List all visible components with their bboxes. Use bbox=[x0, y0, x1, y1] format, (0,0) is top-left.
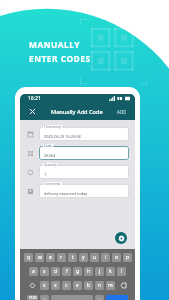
staticText: Timestamp bbox=[44, 125, 61, 129]
staticText: k bbox=[109, 268, 112, 275]
button[interactable]: Enter bbox=[106, 295, 128, 300]
button[interactable]: t bbox=[68, 253, 77, 262]
button[interactable]: q bbox=[24, 253, 33, 262]
staticText: m bbox=[108, 282, 113, 289]
button[interactable]: w bbox=[35, 253, 44, 262]
staticText: r bbox=[60, 254, 63, 261]
button[interactable]: p bbox=[123, 253, 132, 262]
button[interactable]: Comma bbox=[40, 295, 49, 300]
staticText: q bbox=[27, 254, 31, 261]
staticText: t bbox=[72, 254, 74, 261]
staticText: Comments bbox=[44, 182, 61, 186]
staticText: v bbox=[76, 282, 79, 289]
staticText: u bbox=[93, 254, 97, 261]
button[interactable]: x bbox=[51, 281, 60, 290]
staticText: w bbox=[38, 254, 42, 261]
staticText: c bbox=[65, 282, 68, 289]
button[interactable]: Symbols bbox=[27, 295, 38, 300]
staticText: 16:21 bbox=[28, 95, 41, 102]
button[interactable]: z bbox=[40, 281, 49, 290]
staticText: , bbox=[44, 295, 46, 300]
button[interactable]: a bbox=[29, 267, 38, 276]
staticText: e bbox=[49, 254, 52, 261]
staticText: l bbox=[121, 268, 123, 275]
button[interactable]: Settings bbox=[115, 232, 127, 244]
staticText: o bbox=[115, 254, 119, 261]
staticText: Manually Add Code bbox=[51, 108, 103, 116]
button[interactable]: r bbox=[57, 253, 66, 262]
button[interactable]: v bbox=[73, 281, 82, 290]
staticText: n bbox=[98, 282, 102, 289]
button[interactable]: h bbox=[84, 267, 93, 276]
staticText: s bbox=[43, 268, 46, 275]
button[interactable]: j bbox=[95, 267, 104, 276]
staticText: x bbox=[54, 282, 57, 289]
staticText: Quantity bbox=[44, 163, 57, 167]
button[interactable]: k bbox=[106, 267, 115, 276]
button[interactable]: Shift bbox=[26, 281, 38, 290]
button[interactable]: g bbox=[73, 267, 82, 276]
button[interactable]: e bbox=[46, 253, 55, 262]
button[interactable]: d bbox=[51, 267, 60, 276]
staticText: b bbox=[87, 282, 91, 289]
staticText: Code bbox=[44, 144, 52, 148]
button[interactable]: i bbox=[101, 253, 110, 262]
staticText: ENTER CODES bbox=[29, 53, 91, 64]
staticText: d bbox=[54, 268, 58, 275]
staticText: z bbox=[43, 282, 46, 289]
staticText: . bbox=[99, 295, 101, 300]
staticText: MANUALLY bbox=[29, 39, 80, 50]
staticText: p bbox=[126, 254, 130, 261]
staticText: i bbox=[105, 254, 107, 261]
button[interactable]: s bbox=[40, 267, 49, 276]
button[interactable]: b bbox=[84, 281, 93, 290]
button[interactable]: f bbox=[62, 267, 71, 276]
staticText: g bbox=[76, 268, 80, 275]
button[interactable]: n bbox=[95, 281, 104, 290]
staticText: 26364 bbox=[44, 153, 56, 158]
button[interactable]: Period bbox=[95, 295, 104, 300]
staticText: f bbox=[66, 268, 68, 275]
button[interactable]: ADD bbox=[115, 107, 129, 117]
staticText: y bbox=[82, 254, 85, 261]
button[interactable]: u bbox=[90, 253, 99, 262]
staticText: h bbox=[87, 268, 91, 275]
staticText: j bbox=[99, 268, 101, 275]
staticText: a bbox=[32, 268, 35, 275]
button[interactable]: Backspace bbox=[117, 281, 129, 290]
button[interactable]: Close bbox=[28, 107, 37, 116]
staticText: 2020-06-20 16:20:58 bbox=[44, 134, 81, 139]
button[interactable]: c bbox=[62, 281, 71, 290]
staticText: delivery expected today bbox=[44, 191, 88, 196]
button[interactable]: y bbox=[79, 253, 88, 262]
staticText: 1 bbox=[44, 172, 47, 177]
button[interactable]: m bbox=[106, 281, 115, 290]
staticText: ?123 bbox=[29, 295, 37, 300]
staticText: ADD bbox=[117, 109, 127, 115]
button[interactable]: l bbox=[117, 267, 126, 276]
button[interactable]: o bbox=[112, 253, 121, 262]
